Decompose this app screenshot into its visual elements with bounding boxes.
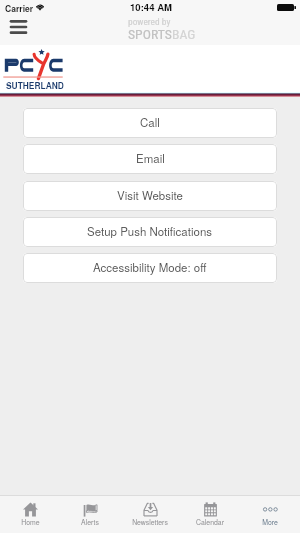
staticText: SUTHERLAND (6, 80, 64, 92)
button[interactable]: Setup Push Notifications (23, 217, 277, 247)
staticText: Accessibility Mode: off (93, 259, 207, 275)
button[interactable]: Calendar (180, 496, 240, 533)
button[interactable]: Accessibility Mode: off (23, 253, 277, 283)
button[interactable]: Email (23, 144, 277, 174)
staticText: Carrier (5, 2, 34, 14)
button[interactable]: Home (0, 496, 60, 533)
staticText: 10:44 AM (130, 0, 173, 14)
button[interactable]: Newsletters (120, 496, 180, 533)
button[interactable]: Open navigation menu (4, 15, 32, 39)
button[interactable]: Alerts (60, 496, 120, 533)
staticText: Home (21, 517, 40, 527)
staticText: BAG (172, 26, 196, 42)
staticText: Call (140, 114, 160, 130)
staticText: Calendar (196, 517, 224, 527)
button[interactable]: More (240, 496, 300, 533)
staticText: Alerts (81, 517, 99, 527)
staticText: Email (136, 150, 165, 166)
staticText: SPORTS (128, 26, 172, 42)
staticText: Setup Push Notifications (87, 223, 213, 239)
staticText: powered by (128, 16, 171, 27)
button[interactable]: Visit Website (23, 181, 277, 211)
staticText: Visit Website (117, 187, 183, 203)
button[interactable]: Call (23, 108, 277, 138)
staticText: More (262, 517, 278, 527)
staticText: Newsletters (132, 517, 168, 527)
